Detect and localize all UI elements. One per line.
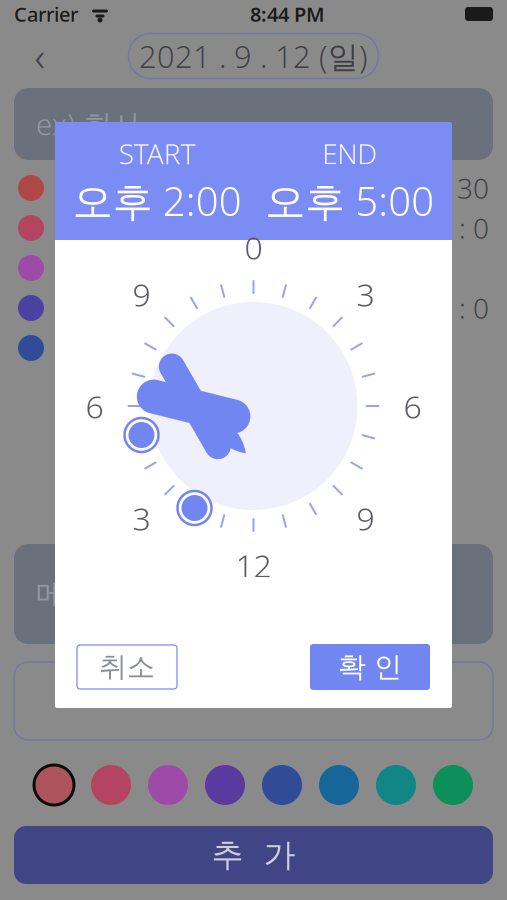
- staticText: 3: [132, 497, 150, 539]
- staticText: END: [322, 135, 377, 172]
- button[interactable]: Colour swatch: [196, 760, 253, 810]
- button[interactable]: 추 가: [14, 826, 493, 884]
- staticText: 9: [132, 273, 150, 315]
- staticText: 9 : 0: [436, 289, 489, 327]
- button[interactable]: 취소: [77, 645, 177, 689]
- staticText: 6 : 0: [436, 209, 489, 247]
- staticText: 2021 . 9 . 12 (일): [139, 36, 368, 76]
- staticText: 취소: [99, 650, 155, 684]
- button[interactable]: Colour swatch: [82, 760, 139, 810]
- staticText: [78, 0, 90, 29]
- staticText: 30: [457, 169, 489, 207]
- button[interactable]: Colour swatch: [367, 760, 424, 810]
- staticText: 오후 2:00: [73, 174, 242, 227]
- staticText: START: [119, 135, 196, 172]
- staticText: 점: [58, 171, 86, 205]
- button[interactable]: Colour swatch: [424, 760, 481, 810]
- button[interactable]: Colour swatch: [25, 760, 82, 810]
- button[interactable]: START: [61, 135, 253, 227]
- staticText: ‹: [34, 29, 45, 82]
- staticText: 6: [85, 385, 103, 427]
- staticText: 3: [356, 273, 374, 315]
- button[interactable]: Back: [18, 34, 62, 78]
- staticText: 6: [403, 385, 421, 427]
- staticText: 오후 5:00: [265, 174, 434, 227]
- staticText: 확 인: [338, 650, 402, 684]
- staticText: 12: [235, 544, 271, 586]
- staticText: 메모: [36, 576, 94, 612]
- staticText: ex) 회사: [36, 104, 141, 143]
- staticText: 9: [356, 497, 374, 539]
- staticText: 추 가: [211, 835, 295, 875]
- staticText: 8:44 PM: [250, 1, 325, 27]
- staticText: 회: [58, 211, 86, 245]
- button[interactable]: Colour swatch: [310, 760, 367, 810]
- button[interactable]: Colour swatch: [139, 760, 196, 810]
- staticText: Carrier: [14, 1, 78, 27]
- button[interactable]: 확 인: [310, 644, 430, 690]
- button[interactable]: END: [253, 135, 446, 227]
- button[interactable]: Colour swatch: [253, 760, 310, 810]
- button[interactable]: 2021 . 9 . 12 (일): [128, 33, 378, 78]
- staticText: 0: [244, 226, 262, 268]
